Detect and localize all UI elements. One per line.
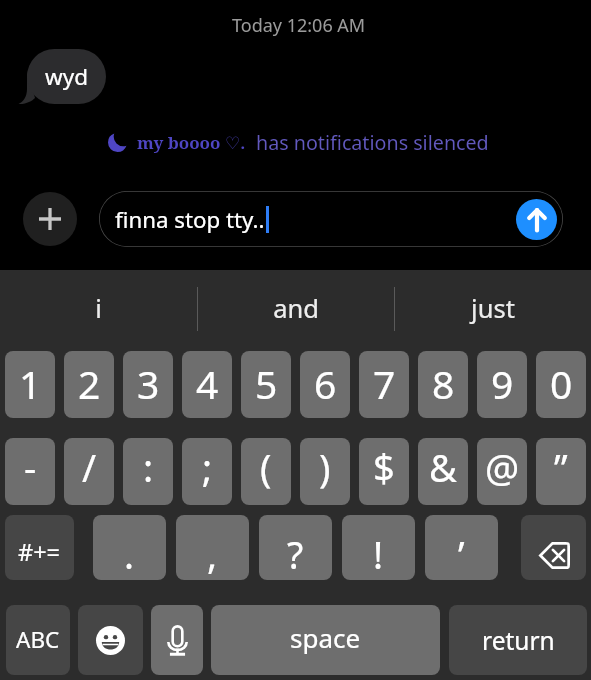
- staticText: my boooo ♡.: [137, 131, 246, 154]
- staticText: ’: [458, 529, 465, 580]
- staticText: Today 12:06 AM: [232, 13, 366, 38]
- button[interactable]: 8: [418, 351, 468, 418]
- button[interactable]: @: [477, 438, 527, 505]
- staticText: return: [482, 624, 555, 657]
- staticText: 6: [314, 357, 337, 410]
- staticText: $: [373, 441, 395, 493]
- button[interactable]: .: [93, 515, 166, 580]
- button[interactable]: Emoji: [78, 605, 143, 675]
- staticText: and: [273, 291, 319, 326]
- button[interactable]: $: [359, 438, 409, 505]
- button[interactable]: and: [198, 270, 394, 347]
- staticText: ”: [554, 441, 568, 493]
- button[interactable]: :: [123, 438, 173, 505]
- staticText: just: [471, 291, 515, 326]
- staticText: has notifications silenced: [256, 129, 489, 156]
- staticText: .: [124, 529, 135, 580]
- staticText: 1: [19, 357, 42, 410]
- staticText: :: [143, 441, 154, 493]
- staticText: 4: [196, 357, 219, 410]
- staticText: &: [429, 441, 457, 493]
- staticText: 7: [373, 357, 396, 410]
- staticText: -: [24, 441, 37, 493]
- button[interactable]: 5: [241, 351, 291, 418]
- button[interactable]: 4: [182, 351, 232, 418]
- staticText: 3: [137, 357, 160, 410]
- staticText: #+=: [18, 536, 61, 568]
- staticText: !: [373, 529, 384, 580]
- staticText: finna stop tty..: [115, 204, 265, 234]
- button[interactable]: /: [64, 438, 114, 505]
- button[interactable]: ”: [536, 438, 586, 505]
- button[interactable]: 2: [64, 351, 114, 418]
- button[interactable]: wyd: [27, 49, 106, 104]
- button[interactable]: i: [0, 270, 197, 347]
- button[interactable]: #+=: [5, 515, 74, 580]
- staticText: i: [95, 291, 102, 326]
- button[interactable]: 9: [477, 351, 527, 418]
- button[interactable]: Backspace: [521, 515, 586, 580]
- staticText: @: [485, 441, 520, 493]
- staticText: wyd: [45, 61, 88, 92]
- other: Emoji: [96, 626, 125, 655]
- staticText: ): [319, 441, 331, 493]
- button[interactable]: 0: [536, 351, 586, 418]
- button[interactable]: -: [5, 438, 55, 505]
- staticText: (: [260, 441, 272, 493]
- other: Backspace: [538, 542, 570, 569]
- button[interactable]: just: [395, 270, 591, 347]
- staticText: ABC: [16, 624, 60, 655]
- staticText: 9: [491, 357, 514, 410]
- staticText: 8: [432, 357, 455, 410]
- button[interactable]: 3: [123, 351, 173, 418]
- staticText: ?: [287, 529, 304, 580]
- staticText: /: [82, 441, 97, 493]
- staticText: 2: [78, 357, 101, 410]
- button[interactable]: space: [211, 605, 440, 675]
- button[interactable]: Voice input: [151, 605, 203, 675]
- button[interactable]: ’: [425, 515, 498, 580]
- button[interactable]: ?: [259, 515, 332, 580]
- button[interactable]: return: [449, 605, 587, 675]
- button[interactable]: Send: [516, 199, 557, 240]
- staticText: 0: [550, 357, 573, 410]
- button[interactable]: Add attachment: [23, 192, 77, 246]
- button[interactable]: ABC: [6, 605, 70, 675]
- button[interactable]: finna stop tty..: [99, 191, 563, 247]
- button[interactable]: ,: [176, 515, 249, 580]
- button[interactable]: 1: [5, 351, 55, 418]
- staticText: space: [290, 620, 361, 655]
- button[interactable]: &: [418, 438, 468, 505]
- other: Voice input: [167, 625, 188, 656]
- button[interactable]: 7: [359, 351, 409, 418]
- button[interactable]: 6: [300, 351, 350, 418]
- staticText: ,: [207, 529, 218, 580]
- button[interactable]: ;: [182, 438, 232, 505]
- button[interactable]: (: [241, 438, 291, 505]
- staticText: ;: [202, 441, 213, 493]
- staticText: 5: [255, 357, 278, 410]
- button[interactable]: ): [300, 438, 350, 505]
- button[interactable]: !: [342, 515, 415, 580]
